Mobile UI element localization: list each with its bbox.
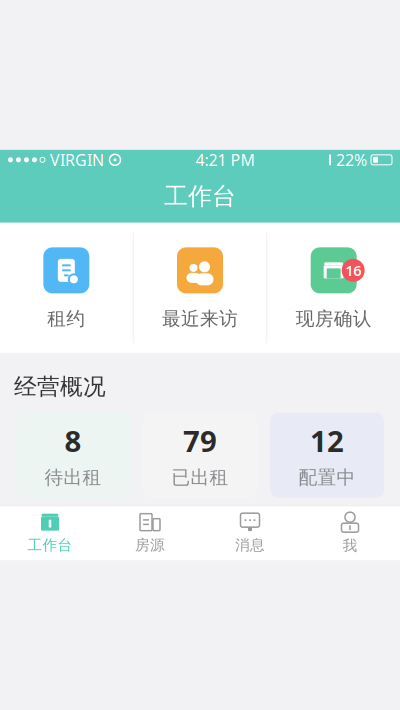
staticText: 22%: [336, 149, 367, 170]
button[interactable]: 我: [300, 506, 400, 561]
button[interactable]: 房源: [100, 506, 200, 560]
staticText: 配置中: [298, 466, 355, 489]
staticText: 现房确认: [296, 307, 372, 330]
staticText: 待出租: [44, 466, 101, 489]
button[interactable]: 最近来访: [134, 229, 266, 346]
staticText: VIRGIN: [50, 149, 104, 170]
button[interactable]: 消息: [200, 506, 300, 560]
button[interactable]: 16: [267, 229, 400, 346]
staticText: 12: [310, 421, 344, 460]
staticText: 79: [183, 421, 217, 460]
staticText: 最近来访: [162, 307, 238, 330]
button[interactable]: 8: [16, 413, 130, 498]
staticText: 工作台: [164, 182, 236, 211]
staticText: 房源: [135, 536, 165, 554]
staticText: 我: [342, 537, 357, 555]
staticText: 16: [345, 261, 361, 280]
staticText: 8: [64, 421, 81, 460]
staticText: 工作台: [27, 536, 72, 554]
button[interactable]: 工作台: [0, 506, 100, 560]
staticText: 经营概况: [14, 373, 106, 401]
button[interactable]: 租约: [0, 229, 133, 346]
staticText: 租约: [47, 307, 85, 330]
button[interactable]: 79: [143, 413, 257, 498]
button[interactable]: 12: [270, 413, 384, 498]
staticText: 4:21 PM: [195, 149, 255, 170]
staticText: 已出租: [171, 466, 228, 489]
staticText: 消息: [235, 536, 265, 554]
